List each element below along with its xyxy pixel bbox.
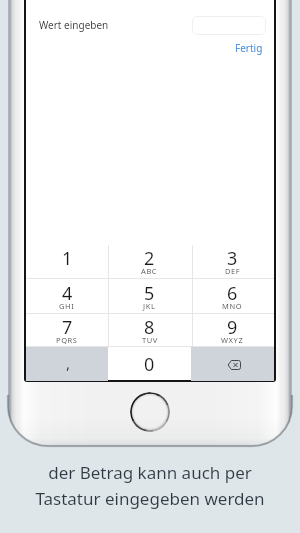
staticText: WXYZ xyxy=(221,335,244,345)
staticText: PQRS xyxy=(56,335,78,345)
staticText: 6 xyxy=(227,281,238,306)
staticText: 3 xyxy=(227,246,238,271)
button[interactable]: Backspace xyxy=(191,347,274,381)
staticText: 4 xyxy=(62,281,73,306)
staticText: GHI xyxy=(59,301,75,311)
staticText: 1 xyxy=(62,246,73,271)
button[interactable]: 2 xyxy=(108,244,191,279)
button[interactable]: , xyxy=(26,347,108,381)
staticText: 9 xyxy=(227,315,238,340)
staticText: Wert eingeben xyxy=(39,18,109,32)
button[interactable]: 6 xyxy=(191,279,274,314)
button[interactable]: 7 xyxy=(26,313,108,347)
staticText: , xyxy=(66,353,71,373)
button[interactable]: 9 xyxy=(191,313,274,347)
button[interactable]: 5 xyxy=(108,279,191,314)
staticText: DEF xyxy=(225,266,241,276)
button[interactable]: Home xyxy=(130,392,170,432)
button[interactable]: 0 xyxy=(108,347,191,381)
button[interactable] xyxy=(192,16,266,35)
staticText: Fertig xyxy=(235,41,263,55)
staticText: der Betrag kann auch per Tastatur eingeg… xyxy=(0,461,300,510)
staticText: 8 xyxy=(144,315,155,340)
staticText: 0 xyxy=(144,352,155,377)
staticText: 7 xyxy=(62,315,73,340)
button[interactable]: 3 xyxy=(191,244,274,279)
staticText: JKL xyxy=(143,301,156,311)
staticText: ABC xyxy=(141,266,158,276)
staticText: 2 xyxy=(144,246,155,271)
button[interactable]: 1 xyxy=(26,244,108,279)
button[interactable]: 4 xyxy=(26,279,108,314)
staticText: 5 xyxy=(144,281,155,306)
button[interactable]: Fertig xyxy=(235,41,263,55)
staticText: MNO xyxy=(222,301,243,311)
button[interactable]: 8 xyxy=(108,313,191,347)
staticText: TUV xyxy=(142,335,158,345)
